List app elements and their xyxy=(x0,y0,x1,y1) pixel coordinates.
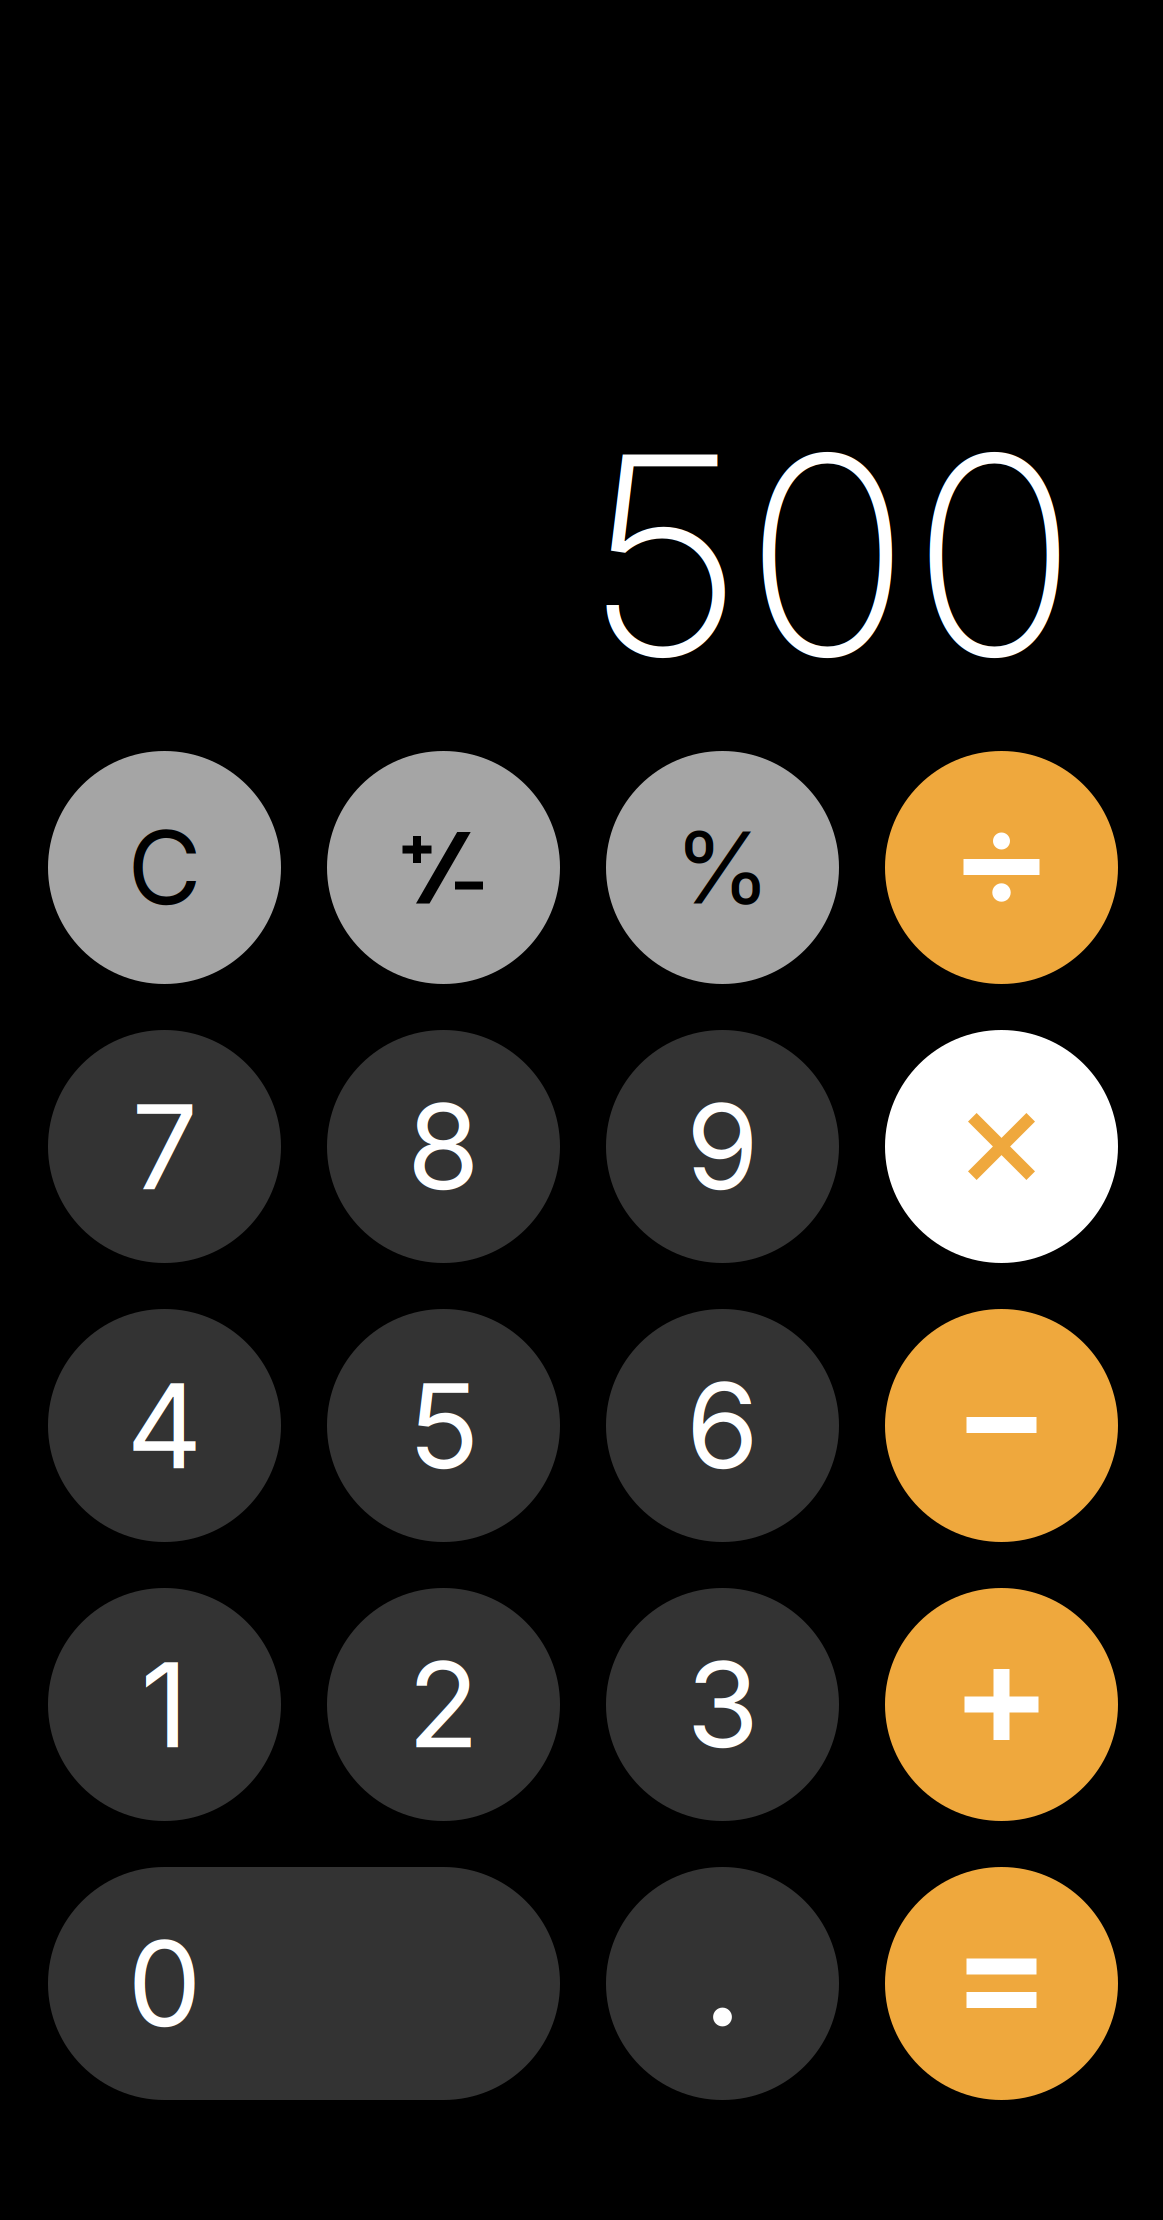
button[interactable]: Toggle sign xyxy=(327,751,560,984)
staticText: 4 xyxy=(126,1354,202,1496)
staticText: 6 xyxy=(686,1354,759,1496)
staticText: 7 xyxy=(131,1075,197,1217)
staticText: C xyxy=(127,806,201,929)
button[interactable]: 2 xyxy=(327,1588,560,1821)
staticText: 1 xyxy=(140,1633,188,1775)
staticText: % xyxy=(674,808,771,927)
button[interactable]: Divide xyxy=(885,751,1118,984)
button[interactable]: 9 xyxy=(606,1030,839,1263)
button[interactable]: Multiply xyxy=(885,1030,1118,1263)
button[interactable]: Equals xyxy=(885,1867,1118,2100)
staticText: 2 xyxy=(407,1633,479,1775)
staticText: 9 xyxy=(686,1075,759,1217)
button[interactable]: 0 xyxy=(48,1867,560,2100)
button[interactable]: 5 xyxy=(327,1309,560,1542)
button[interactable]: 6 xyxy=(606,1309,839,1542)
staticText: 3 xyxy=(686,1633,758,1775)
button[interactable]: 1 xyxy=(48,1588,281,1821)
button[interactable]: % xyxy=(606,751,839,984)
staticText: 8 xyxy=(407,1075,480,1217)
button[interactable]: 4 xyxy=(48,1309,281,1542)
button[interactable]: 8 xyxy=(327,1030,560,1263)
button[interactable]: C xyxy=(48,751,281,984)
button[interactable]: Decimal point xyxy=(606,1867,839,2100)
staticText: 500 xyxy=(584,388,1078,722)
staticText: 5 xyxy=(408,1354,479,1496)
button[interactable]: 7 xyxy=(48,1030,281,1263)
button[interactable]: Add xyxy=(885,1588,1118,1821)
button[interactable]: Subtract xyxy=(885,1309,1118,1542)
staticText: 0 xyxy=(127,1912,201,2054)
button[interactable]: 3 xyxy=(606,1588,839,1821)
